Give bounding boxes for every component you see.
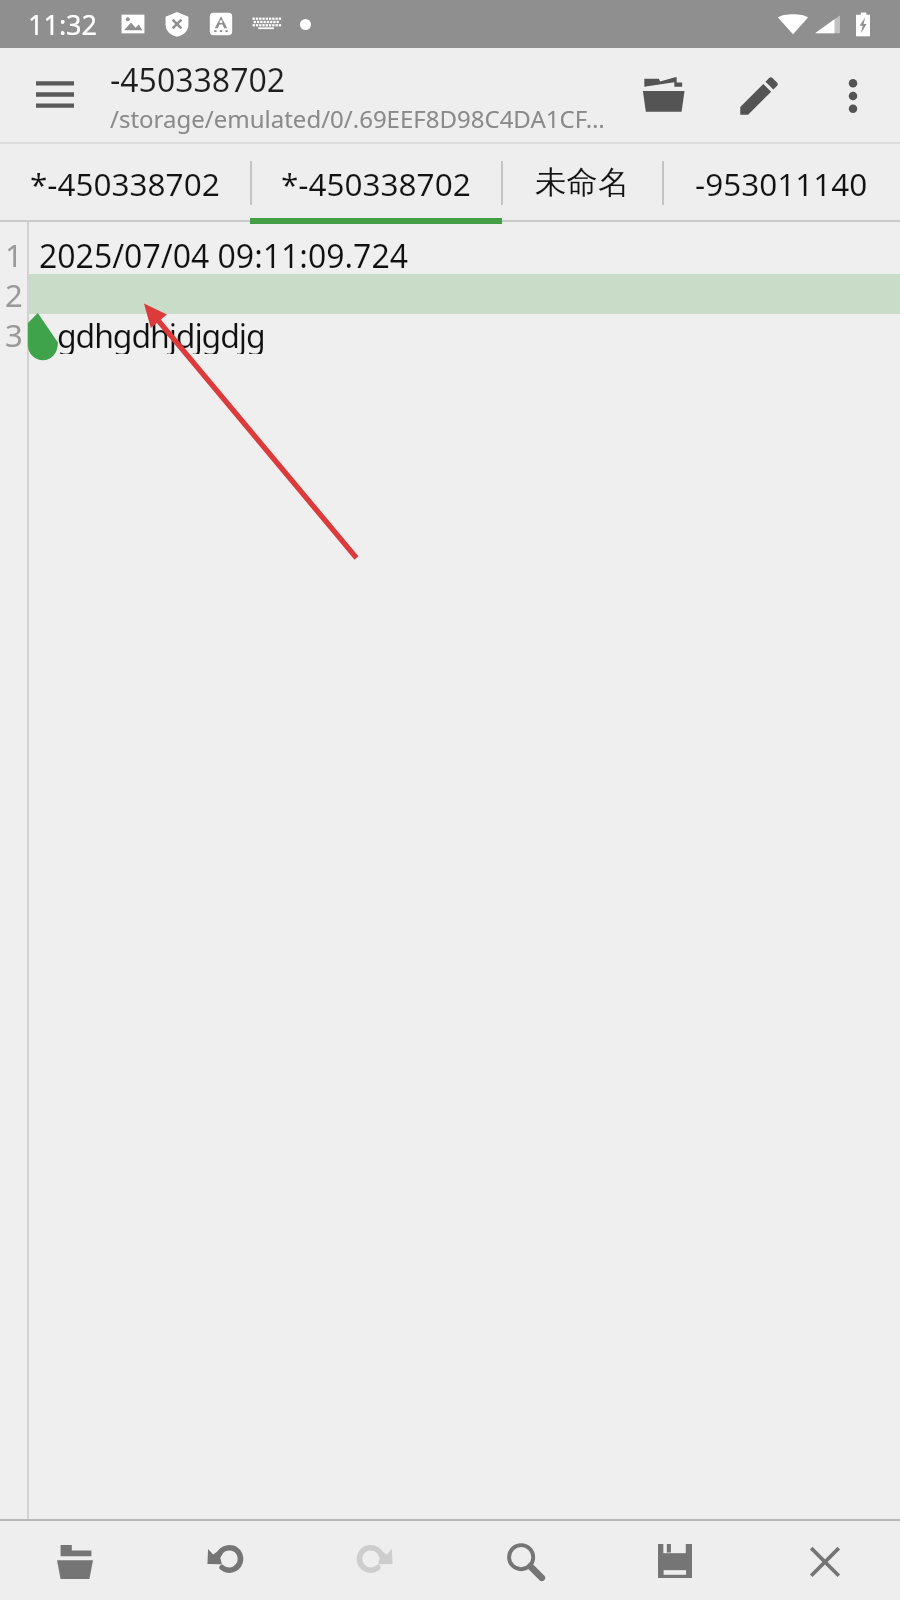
button[interactable]: More options: [806, 48, 900, 144]
staticText: 2025/07/04 09:11:09.724: [39, 234, 409, 274]
button[interactable]: Search: [450, 1521, 600, 1600]
staticText: /storage/emulated/0/.69EEF8D98C4DA1CF…: [110, 102, 605, 135]
button[interactable]: Open: [0, 1521, 150, 1600]
button[interactable]: -953011140: [662, 144, 900, 222]
staticText: -450338702: [110, 58, 286, 102]
button[interactable]: Close: [750, 1521, 900, 1600]
button[interactable]: 1: [0, 222, 900, 1519]
button[interactable]: Navigation menu: [0, 48, 110, 144]
staticText: *-450338702: [30, 162, 220, 205]
button[interactable]: Redo: [300, 1521, 450, 1600]
button[interactable]: Open file: [616, 48, 711, 144]
button[interactable]: 未命名: [502, 144, 662, 222]
staticText: gdhgdhjdjgdjg: [57, 314, 265, 354]
staticText: 2: [5, 274, 23, 314]
staticText: 未命名: [535, 163, 630, 203]
staticText: *-450338702: [281, 162, 471, 205]
button[interactable]: Undo: [150, 1521, 300, 1600]
button[interactable]: Save: [600, 1521, 750, 1600]
staticText: 3: [5, 314, 23, 354]
staticText: -953011140: [695, 162, 868, 205]
button[interactable]: *-450338702: [0, 144, 250, 222]
staticText: 11:32: [28, 6, 98, 43]
staticText: 1: [5, 234, 23, 274]
button[interactable]: *-450338702: [250, 144, 502, 222]
button[interactable]: Edit: [711, 48, 806, 144]
